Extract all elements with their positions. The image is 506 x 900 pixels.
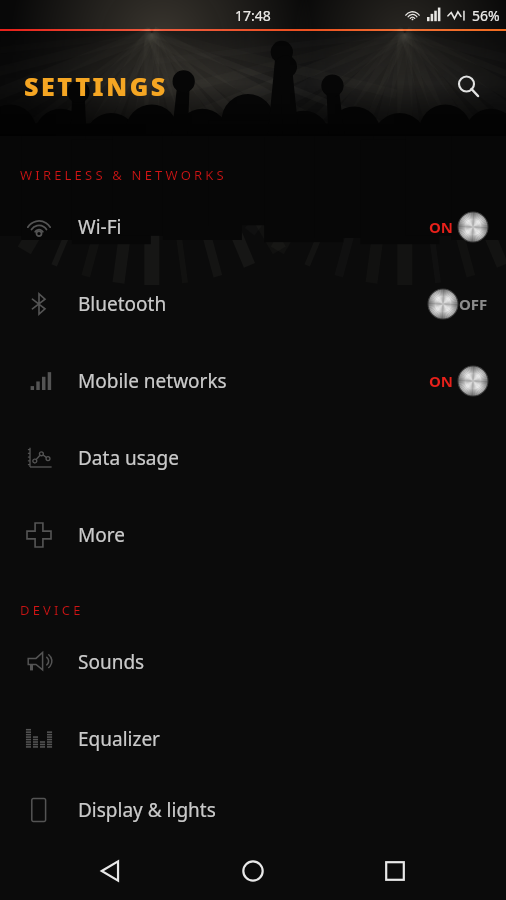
staticText: 17:48 [235,6,271,25]
button[interactable]: Home [222,842,284,900]
button[interactable]: Recents [364,842,426,900]
staticText: Bluetooth [78,291,167,317]
staticText: Equalizer [78,726,160,752]
staticText: SETTINGS [24,69,168,103]
staticText: WIRELESS & NETWORKS [20,166,227,184]
button[interactable]: Sounds [0,623,506,700]
button[interactable]: More [0,496,506,573]
button[interactable]: Wi-Fi [0,188,506,265]
staticText: Sounds [78,649,145,675]
staticText: Wi-Fi [78,214,122,240]
staticText: DEVICE [20,601,84,619]
button[interactable]: Bluetooth [0,265,506,342]
button[interactable]: Data usage [0,419,506,496]
button[interactable]: Back [80,842,142,900]
button[interactable]: Mobile networks [0,342,506,419]
button[interactable]: Equalizer [0,700,506,777]
staticText: Data usage [78,445,179,471]
staticText: ON [429,371,454,391]
staticText: Mobile networks [78,368,227,394]
button[interactable]: Search [444,62,492,110]
staticText: Display & lights [78,797,216,823]
staticText: 56% [472,6,500,25]
staticText: ON [429,217,454,237]
staticText: OFF [459,294,488,314]
button[interactable]: Display & lights [0,777,506,842]
staticText: More [78,522,125,548]
